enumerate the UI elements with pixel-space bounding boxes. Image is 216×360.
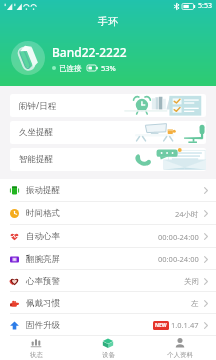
staticText: 固件升级	[26, 320, 60, 331]
staticText: 手环	[98, 15, 118, 28]
button[interactable]: 状态	[0, 336, 72, 360]
staticText: 闹钟/日程	[19, 100, 57, 112]
button[interactable]: 个人资料	[144, 336, 216, 360]
staticText: 关闭	[184, 277, 199, 286]
staticText: 时间格式	[26, 208, 60, 219]
button[interactable]: 自动心率	[0, 225, 216, 248]
button[interactable]: 久坐提醒	[10, 121, 206, 144]
staticText: 1.0.1.47	[171, 320, 199, 330]
staticText: 心率预警	[26, 276, 60, 287]
staticText: 智能提醒	[19, 154, 53, 165]
button[interactable]: 时间格式	[0, 202, 216, 225]
staticText: NEW	[155, 322, 167, 329]
staticText: 久坐提醒	[19, 127, 53, 138]
button[interactable]: 心率预警	[0, 270, 216, 292]
staticText: 设备	[102, 351, 115, 359]
staticText: 佩戴习惯	[26, 298, 60, 309]
staticText: 个人资料	[167, 351, 193, 359]
staticText: 24小时	[175, 209, 199, 219]
button[interactable]: 智能提醒	[10, 148, 206, 171]
staticText: 00:00-24:00	[158, 232, 199, 242]
staticText: 翻腕亮屏	[26, 254, 60, 265]
staticText: Band22-2222	[52, 44, 127, 60]
button[interactable]: 振动提醒	[0, 179, 216, 202]
staticText: 00:00-24:00	[158, 254, 199, 264]
staticText: 状态	[30, 351, 43, 359]
staticText: 53%	[101, 63, 116, 73]
button[interactable]: 翻腕亮屏	[0, 248, 216, 270]
button[interactable]: 佩戴习惯	[0, 292, 216, 314]
staticText: 自动心率	[26, 231, 60, 242]
button[interactable]: 闹钟/日程	[10, 94, 206, 117]
button[interactable]: 设备	[72, 336, 144, 360]
button[interactable]: 固件升级	[0, 314, 216, 336]
staticText: 5:53	[198, 1, 212, 11]
staticText: 左	[191, 299, 199, 308]
staticText: 振动提醒	[26, 185, 60, 196]
staticText: 已连接	[59, 64, 82, 73]
